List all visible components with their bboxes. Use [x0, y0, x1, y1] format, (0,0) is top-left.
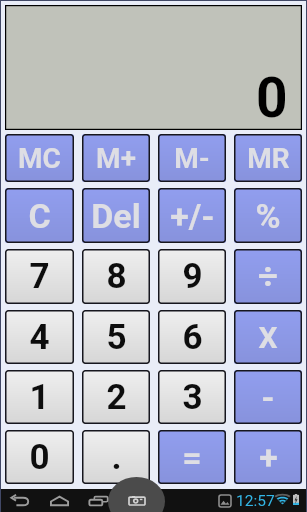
- staticText: X: [258, 320, 278, 355]
- staticText: M+: [96, 142, 136, 175]
- button[interactable]: MC: [5, 134, 74, 182]
- button[interactable]: 9: [158, 249, 226, 304]
- staticText: C: [28, 196, 51, 236]
- button[interactable]: Del: [82, 188, 150, 243]
- staticText: MR: [247, 142, 290, 175]
- staticText: 0: [29, 437, 50, 478]
- button[interactable]: 0: [5, 430, 74, 484]
- staticText: .: [111, 437, 122, 478]
- button[interactable]: 8: [82, 249, 150, 304]
- staticText: 6: [182, 317, 203, 358]
- other: Wi-Fi: [276, 495, 289, 504]
- button[interactable]: Recent apps: [79, 489, 117, 512]
- button[interactable]: 2: [82, 370, 150, 424]
- staticText: 0: [256, 66, 288, 130]
- button[interactable]: 7: [5, 249, 74, 304]
- staticText: 2: [106, 377, 127, 418]
- button[interactable]: Screenshot: [118, 489, 156, 512]
- button[interactable]: Back: [1, 489, 39, 512]
- staticText: 7: [29, 256, 50, 297]
- button[interactable]: X: [234, 310, 302, 364]
- staticText: M-: [174, 142, 210, 175]
- button[interactable]: 6: [158, 310, 226, 364]
- button[interactable]: 4: [5, 310, 74, 364]
- staticText: ÷: [258, 256, 278, 297]
- staticText: +: [259, 437, 278, 477]
- staticText: 1: [29, 377, 50, 418]
- staticText: MC: [18, 142, 61, 175]
- staticText: 9: [182, 256, 203, 297]
- button[interactable]: M-: [158, 134, 226, 182]
- staticText: -: [261, 377, 275, 417]
- button[interactable]: -: [234, 370, 302, 424]
- staticText: 4: [29, 317, 50, 358]
- staticText: 12:57: [236, 492, 275, 510]
- button[interactable]: MR: [234, 134, 302, 182]
- button[interactable]: Home: [40, 489, 78, 512]
- staticText: Del: [91, 196, 141, 236]
- button[interactable]: 5: [82, 310, 150, 364]
- staticText: %: [255, 196, 281, 236]
- button[interactable]: +: [234, 430, 302, 484]
- button[interactable]: 3: [158, 370, 226, 424]
- button[interactable]: 1: [5, 370, 74, 424]
- staticText: 5: [106, 317, 127, 358]
- button[interactable]: M+: [82, 134, 150, 182]
- button[interactable]: C: [5, 188, 74, 243]
- staticText: +/-: [170, 196, 215, 236]
- button[interactable]: =: [158, 430, 226, 484]
- button[interactable]: %: [234, 188, 302, 243]
- button[interactable]: .: [82, 430, 150, 484]
- button[interactable]: +/-: [158, 188, 226, 243]
- button[interactable]: ÷: [234, 249, 302, 304]
- staticText: =: [182, 437, 202, 477]
- staticText: 3: [182, 377, 203, 418]
- staticText: 8: [106, 256, 127, 297]
